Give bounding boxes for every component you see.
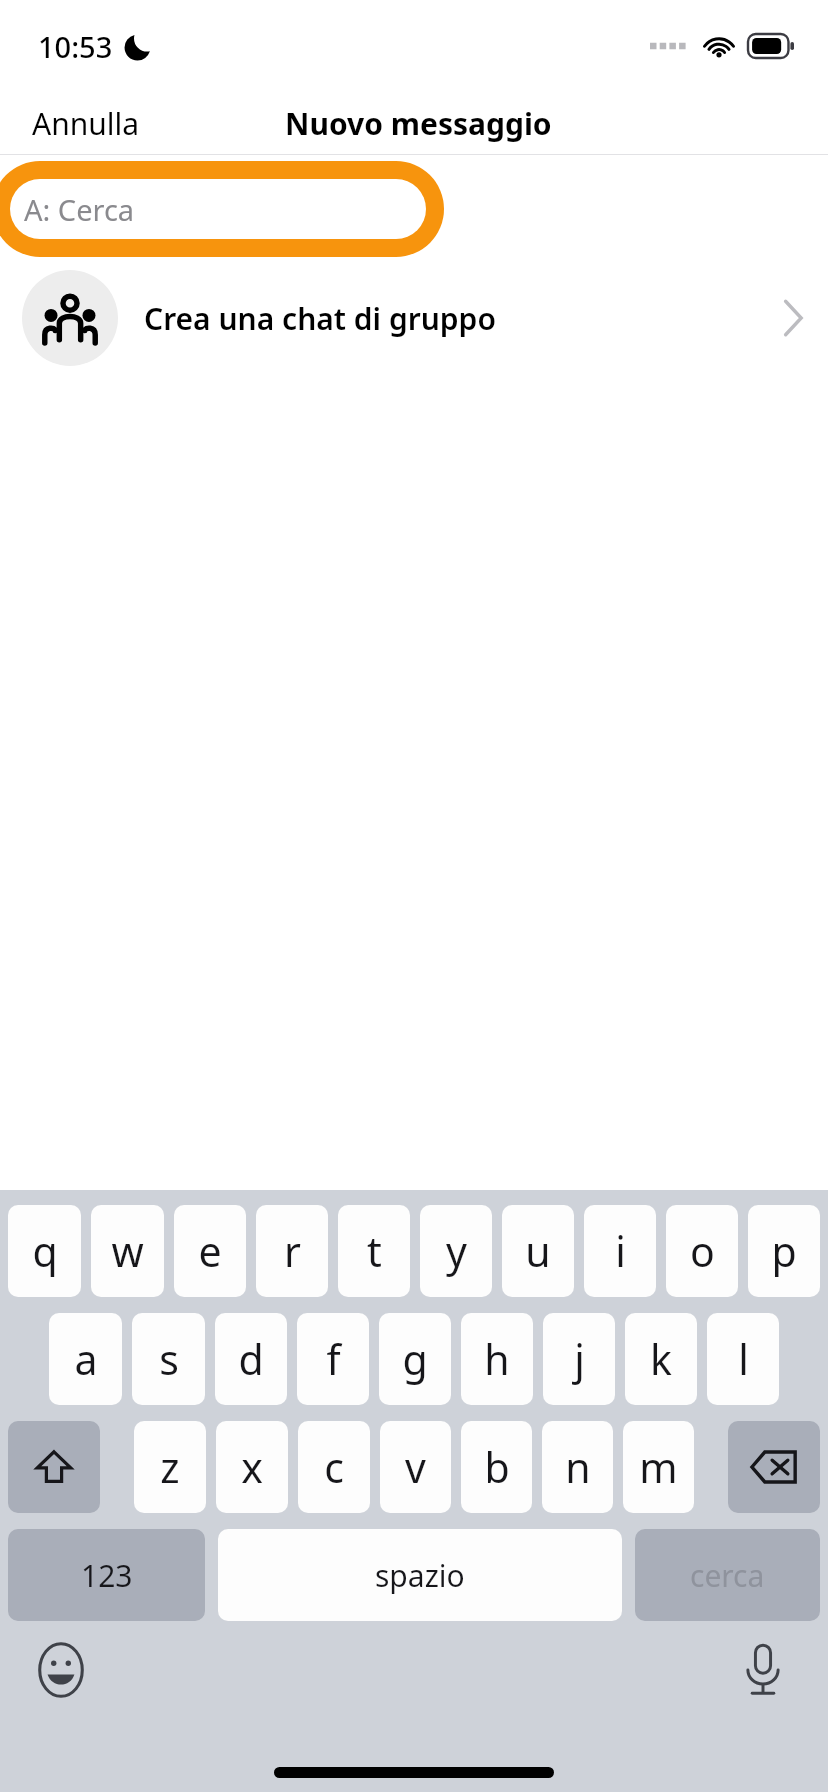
button[interactable]: w xyxy=(91,1205,164,1297)
button[interactable]: s xyxy=(132,1313,205,1405)
button[interactable]: cerca xyxy=(635,1529,820,1621)
staticText: y xyxy=(446,1223,467,1279)
staticText: m xyxy=(639,1439,678,1495)
staticText: x xyxy=(241,1439,263,1495)
button[interactable]: b xyxy=(461,1421,532,1513)
button[interactable]: o xyxy=(666,1205,738,1297)
staticText: t xyxy=(367,1223,382,1279)
button[interactable]: m xyxy=(623,1421,694,1513)
button[interactable]: h xyxy=(461,1313,533,1405)
staticText: z xyxy=(160,1439,180,1495)
staticText: q xyxy=(32,1223,58,1279)
button[interactable]: u xyxy=(502,1205,574,1297)
button[interactable]: i xyxy=(584,1205,656,1297)
button[interactable]: j xyxy=(543,1313,615,1405)
button[interactable]: f xyxy=(297,1313,369,1405)
staticText: r xyxy=(284,1223,301,1279)
button[interactable]: v xyxy=(380,1421,451,1513)
button[interactable]: Backspace xyxy=(728,1421,820,1513)
button[interactable]: r xyxy=(256,1205,328,1297)
staticText: o xyxy=(690,1223,715,1279)
button[interactable]: Emoji xyxy=(30,1639,92,1701)
button[interactable]: a xyxy=(49,1313,122,1405)
button[interactable]: Crea una chat di gruppo xyxy=(0,263,828,373)
button[interactable]: e xyxy=(174,1205,246,1297)
staticText: A: Cerca xyxy=(24,190,135,229)
staticText: Nuovo messaggio xyxy=(285,103,552,144)
staticText: w xyxy=(111,1223,144,1279)
staticText: 123 xyxy=(81,1555,133,1596)
button[interactable]: x xyxy=(216,1421,288,1513)
button[interactable]: q xyxy=(8,1205,81,1297)
button[interactable]: t xyxy=(338,1205,410,1297)
staticText: c xyxy=(324,1439,344,1495)
staticText: j xyxy=(574,1331,585,1387)
staticText: b xyxy=(484,1439,510,1495)
button[interactable]: spazio xyxy=(218,1529,622,1621)
staticText: v xyxy=(405,1439,426,1495)
staticText: cerca xyxy=(690,1555,765,1596)
staticText: e xyxy=(198,1223,222,1279)
staticText: f xyxy=(326,1331,341,1387)
staticText: i xyxy=(615,1223,626,1279)
button[interactable]: n xyxy=(542,1421,613,1513)
staticText: p xyxy=(771,1223,797,1279)
button[interactable]: Annulla xyxy=(0,97,160,150)
staticText: spazio xyxy=(375,1555,465,1596)
button[interactable]: c xyxy=(298,1421,370,1513)
staticText: n xyxy=(565,1439,591,1495)
button[interactable]: 123 xyxy=(8,1529,205,1621)
button[interactable]: g xyxy=(379,1313,451,1405)
button[interactable]: d xyxy=(215,1313,287,1405)
staticText: Annulla xyxy=(32,103,140,144)
button[interactable]: p xyxy=(748,1205,820,1297)
button[interactable]: l xyxy=(707,1313,779,1405)
staticText: k xyxy=(650,1331,672,1387)
staticText: h xyxy=(484,1331,510,1387)
staticText: u xyxy=(525,1223,551,1279)
staticText: s xyxy=(159,1331,179,1387)
staticText: a xyxy=(74,1331,98,1387)
staticText: Crea una chat di gruppo xyxy=(144,298,784,339)
staticText: d xyxy=(238,1331,264,1387)
button[interactable]: Shift xyxy=(8,1421,100,1513)
staticText: 10:53 xyxy=(38,27,113,66)
button[interactable]: y xyxy=(420,1205,492,1297)
button[interactable]: A: Cerca xyxy=(10,179,426,239)
button[interactable]: Dictation xyxy=(732,1639,794,1701)
staticText: g xyxy=(402,1331,428,1387)
staticText: l xyxy=(738,1331,749,1387)
button[interactable]: k xyxy=(625,1313,697,1405)
button[interactable]: z xyxy=(134,1421,206,1513)
